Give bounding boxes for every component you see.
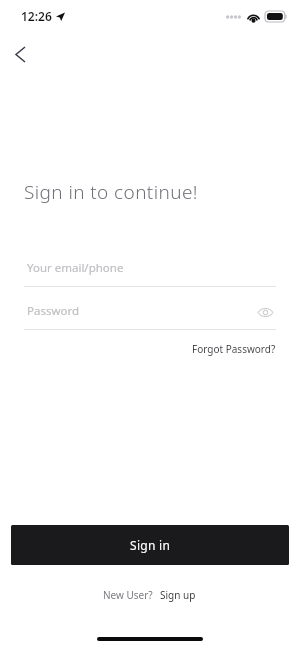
button[interactable]: Sign in [11,525,289,565]
button[interactable]: Show password [254,301,276,323]
staticText: Sign in [130,537,171,553]
staticText: Password [27,303,80,319]
button[interactable]: Password [24,300,276,330]
staticText: Sign in to continue! [24,179,198,205]
staticText: 12:26 [21,8,52,24]
button[interactable]: Sign up [158,585,198,605]
staticText: Your email/phone [27,260,124,276]
button[interactable]: Forgot Password? [182,338,300,360]
button[interactable]: Your email/phone [24,257,276,287]
staticText: New User? [103,588,153,602]
button[interactable]: Back [5,39,36,70]
